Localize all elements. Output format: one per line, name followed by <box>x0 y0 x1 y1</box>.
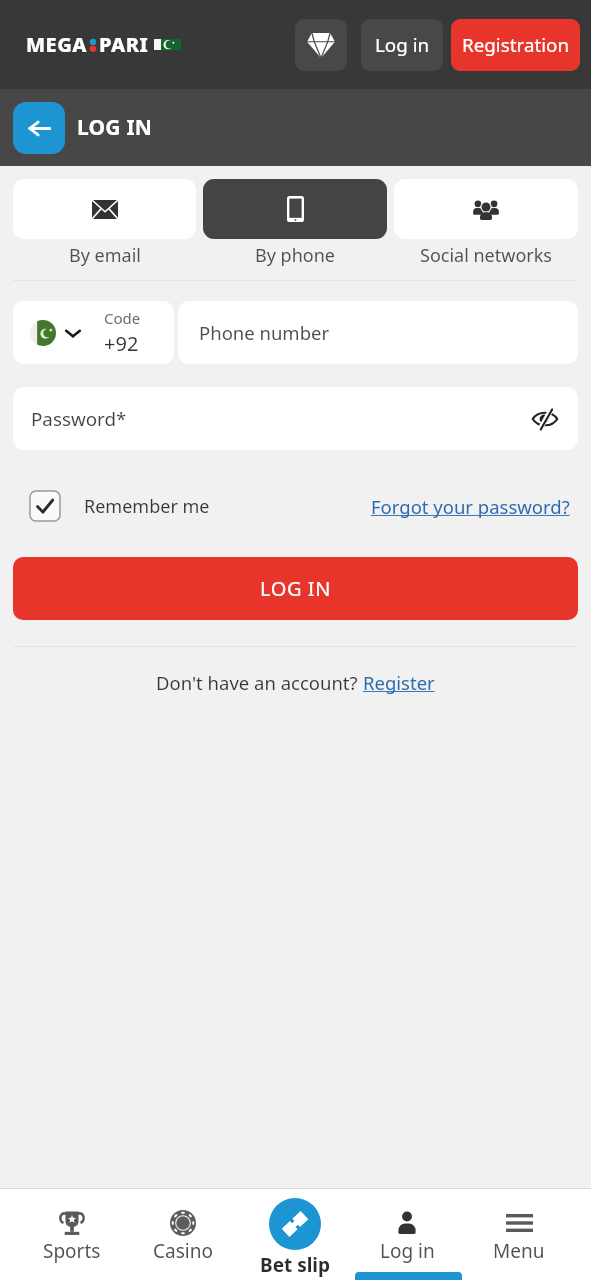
staticText: Menu <box>493 1238 545 1264</box>
button[interactable]: Registration <box>451 19 580 71</box>
button[interactable]: Bet slip <box>239 1189 351 1280</box>
staticText: Don't have an account? <box>156 670 363 695</box>
button[interactable]: Log in <box>351 1189 463 1280</box>
button[interactable]: Social networks <box>394 179 578 268</box>
button[interactable]: Bonuses <box>295 19 347 71</box>
staticText: LOG IN <box>260 575 332 602</box>
button[interactable]: Register <box>363 670 435 695</box>
button[interactable]: Menu <box>463 1189 575 1280</box>
button[interactable]: Show password <box>529 403 561 435</box>
button[interactable]: Password* <box>13 387 578 450</box>
staticText: MEGA <box>26 31 87 58</box>
staticText: By phone <box>255 243 335 268</box>
button[interactable]: Casino <box>127 1189 239 1280</box>
button[interactable]: By phone <box>203 179 387 268</box>
staticText: Password* <box>31 406 127 432</box>
button[interactable]: Phone number <box>178 301 578 364</box>
staticText: Sports <box>43 1238 101 1264</box>
button[interactable]: LOG IN <box>13 557 578 620</box>
staticText: PARI <box>99 31 149 58</box>
button[interactable]: Forgot your password? <box>371 494 570 519</box>
staticText: Code <box>104 308 141 328</box>
staticText: Log in <box>375 32 430 58</box>
staticText: Log in <box>380 1238 435 1264</box>
button[interactable]: Sports <box>16 1189 127 1280</box>
staticText: +92 <box>104 330 139 357</box>
button[interactable]: Back <box>13 102 65 154</box>
button[interactable]: Remember me <box>30 491 210 521</box>
staticText: Social networks <box>420 243 552 268</box>
staticText: Remember me <box>84 494 210 519</box>
staticText: Bet slip <box>260 1252 331 1278</box>
staticText: Casino <box>153 1238 213 1264</box>
staticText: By email <box>69 243 141 268</box>
button[interactable]: Code <box>13 301 174 364</box>
staticText: Register <box>363 670 435 695</box>
button[interactable]: By email <box>13 179 196 268</box>
staticText: Forgot your password? <box>371 494 570 519</box>
staticText: Phone number <box>199 320 330 345</box>
staticText: LOG IN <box>77 113 153 142</box>
staticText: Registration <box>462 32 570 58</box>
button[interactable]: Log in <box>361 19 443 71</box>
